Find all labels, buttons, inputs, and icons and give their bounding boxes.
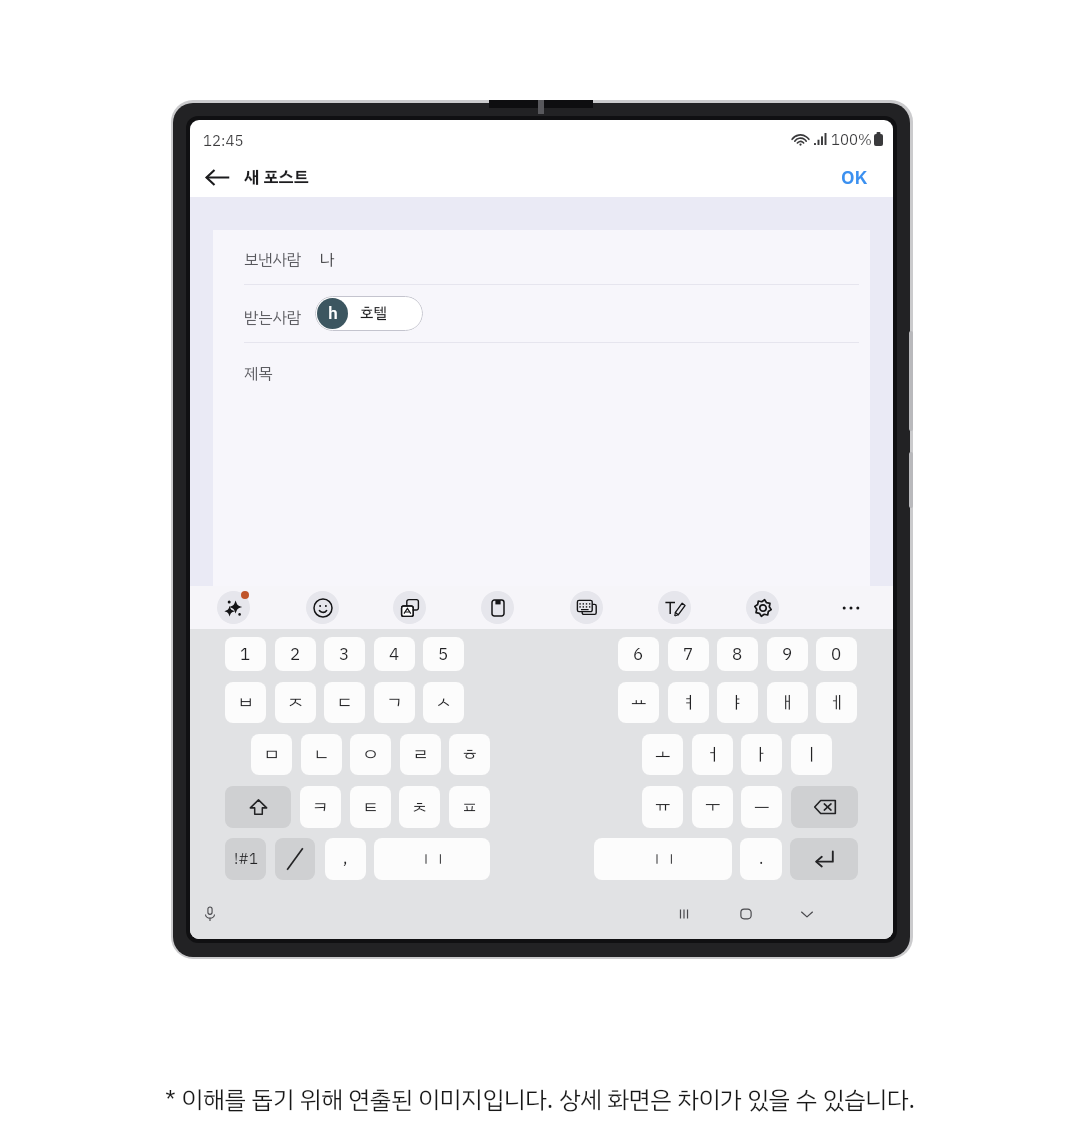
staticText: !#1 (234, 848, 258, 871)
button[interactable]: ㄴ (301, 734, 342, 775)
button[interactable]: ㄷ (324, 682, 365, 723)
staticText: ㅍ (462, 795, 478, 820)
staticText: 3 (339, 642, 350, 667)
button[interactable]: h (315, 296, 423, 331)
staticText: 새 포스트 (244, 165, 309, 190)
staticText: OK (841, 163, 868, 192)
button[interactable]: ㅁ (251, 734, 292, 775)
staticText: 2 (290, 642, 301, 667)
staticText: ㅡ (754, 795, 770, 820)
button[interactable]: Recents (673, 903, 695, 925)
button[interactable]: Back (198, 158, 237, 197)
button[interactable]: ㅣ (791, 734, 832, 775)
button[interactable]: 8 (717, 637, 758, 671)
staticText: 7 (683, 642, 694, 667)
button[interactable]: enter (790, 838, 858, 880)
staticText: 12:45 (203, 130, 244, 153)
staticText: ㅌ (363, 795, 379, 820)
staticText: 100% (831, 129, 872, 149)
staticText: ㅇ (363, 742, 379, 767)
button[interactable]: ㅜ (692, 786, 733, 828)
staticText: ㅁ (264, 742, 280, 767)
staticText: 4 (389, 642, 400, 667)
button[interactable]: 2 (275, 637, 316, 671)
staticText: ㅅ (436, 690, 452, 715)
button[interactable]: 9 (767, 637, 808, 671)
button[interactable]: 3 (324, 637, 365, 671)
button[interactable]: Voice input (199, 903, 221, 925)
button[interactable]: 1 (225, 637, 266, 671)
staticText: ㅠ (655, 795, 671, 820)
staticText: ㅎ (462, 742, 478, 767)
button[interactable]: ㅂ (225, 682, 266, 723)
button[interactable]: ㅍ (449, 786, 490, 828)
staticText: 9 (782, 642, 793, 667)
staticText: 제목 (244, 362, 273, 386)
button[interactable]: . (740, 838, 782, 880)
staticText: ㅓ (705, 742, 721, 767)
staticText: 보낸사람 (244, 248, 302, 272)
button[interactable]: 4 (374, 637, 415, 671)
button[interactable]: ㅈ (275, 682, 316, 723)
button[interactable]: 0 (816, 637, 857, 671)
button[interactable]: ㄱ (374, 682, 415, 723)
button[interactable]: ㅔ (816, 682, 857, 723)
button[interactable]: OK (831, 161, 877, 193)
staticText: 0 (831, 642, 842, 667)
button[interactable]: ㅛ (618, 682, 659, 723)
button[interactable]: Home (735, 903, 757, 925)
button[interactable]: ㅊ (399, 786, 440, 828)
staticText: ㅂ (238, 690, 254, 715)
button[interactable]: ㄹ (400, 734, 441, 775)
staticText: ㄴ (314, 742, 330, 767)
button[interactable]: ㅏ (741, 734, 782, 775)
button[interactable]: ㅓ (692, 734, 733, 775)
button[interactable]: , (325, 838, 366, 880)
button[interactable]: ㅇ (350, 734, 391, 775)
button[interactable]: Settings (746, 591, 779, 624)
button[interactable]: shift (225, 786, 291, 828)
staticText: 호텔 (360, 302, 387, 325)
button[interactable]: AI suggestions (217, 591, 250, 624)
button[interactable]: Keyboard modes (570, 591, 603, 624)
button[interactable]: Translate (393, 591, 426, 624)
button[interactable]: Clipboard (481, 591, 514, 624)
button[interactable]: ㅗ (642, 734, 683, 775)
button[interactable]: space (594, 838, 732, 880)
button[interactable]: ㅡ (741, 786, 782, 828)
button[interactable]: bksp (791, 786, 858, 828)
staticText: ㅕ (681, 690, 697, 715)
staticText: ㄱ (387, 690, 403, 715)
staticText: ㄹ (413, 742, 429, 767)
button[interactable]: More options (834, 591, 867, 624)
button[interactable]: !#1 (225, 838, 266, 880)
staticText: ㅈ (288, 690, 304, 715)
button[interactable]: ㅐ (767, 682, 808, 723)
staticText: ㅋ (313, 795, 329, 820)
staticText: ㅣ (804, 742, 820, 767)
staticText: 5 (438, 642, 449, 667)
button[interactable]: 5 (423, 637, 464, 671)
button[interactable]: ㅕ (668, 682, 709, 723)
button[interactable]: ㅋ (300, 786, 341, 828)
staticText: . (759, 847, 764, 871)
staticText: ㅏ (754, 742, 770, 767)
staticText: ㅑ (730, 690, 746, 715)
button[interactable]: Handwriting (658, 591, 691, 624)
staticText: ㄷ (337, 690, 353, 715)
staticText: ㅗ (655, 742, 671, 767)
button[interactable]: ㅑ (717, 682, 758, 723)
staticText: ㅔ (829, 690, 845, 715)
button[interactable]: ㅌ (350, 786, 391, 828)
staticText: ㅊ (412, 795, 428, 820)
button[interactable]: ㅎ (449, 734, 490, 775)
button[interactable]: Emoji (306, 591, 339, 624)
button[interactable]: 7 (668, 637, 709, 671)
button[interactable]: space (374, 838, 490, 880)
staticText: 받는사람 (244, 306, 302, 330)
button[interactable]: ㅅ (423, 682, 464, 723)
button[interactable]: 6 (618, 637, 659, 671)
button[interactable]: ㅠ (642, 786, 683, 828)
button[interactable]: Hide keyboard (796, 903, 818, 925)
button[interactable]: hanyeong (275, 838, 315, 880)
